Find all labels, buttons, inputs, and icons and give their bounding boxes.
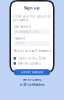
button[interactable]: Create account [13,69,50,75]
staticText: you@example.com [15,30,38,33]
staticText: •••••••••• [15,42,25,45]
staticText: Sign up [24,5,40,10]
staticText: Create account [21,70,43,74]
button[interactable]: Email me updates [13,62,50,65]
staticText: Email me updates [17,62,40,65]
staticText: No KYC/AML [23,78,41,81]
staticText: Password [13,37,25,40]
staticText: Create your free account to get started [13,15,51,22]
staticText: I agree to the Terms [17,57,45,60]
staticText: or ID verification [19,83,44,86]
staticText: Must be at least 8 characters [13,49,50,53]
button[interactable]: I agree to the Terms [13,57,50,60]
staticText: Email address [13,25,30,28]
